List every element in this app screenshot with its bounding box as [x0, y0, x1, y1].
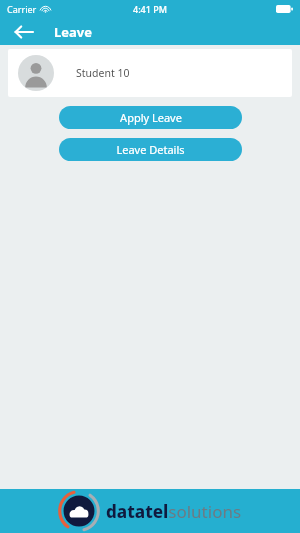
staticText: Leave Details: [116, 142, 185, 157]
staticText: datatelsolutions: [106, 500, 242, 523]
staticText: Apply Leave: [120, 110, 182, 125]
staticText: Carrier: [7, 3, 37, 15]
button[interactable]: Leave Details: [59, 138, 242, 161]
staticText: 4:41 PM: [133, 3, 167, 15]
staticText: Leave: [54, 23, 92, 41]
button[interactable]: Apply Leave: [59, 106, 242, 129]
button[interactable]: Student 10: [8, 49, 292, 97]
staticText: Student 10: [76, 66, 130, 80]
button[interactable]: Back: [10, 20, 38, 44]
